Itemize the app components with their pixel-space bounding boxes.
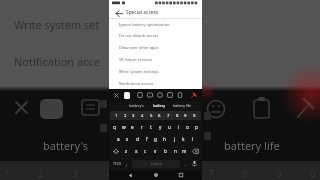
button[interactable]: a <box>115 133 122 145</box>
button[interactable]: Backspace <box>191 145 200 157</box>
button[interactable]: Close toolbar <box>112 89 121 101</box>
staticText: x <box>135 148 138 154</box>
button[interactable]: Clipboard <box>135 89 144 101</box>
staticText: w <box>122 124 126 130</box>
button[interactable]: Back <box>125 170 135 180</box>
button[interactable]: Full stop <box>182 157 189 170</box>
button[interactable]: Recent apps <box>176 170 186 180</box>
button[interactable]: Navigate up <box>109 6 126 18</box>
staticText: u <box>168 124 171 130</box>
button[interactable]: s <box>124 133 131 145</box>
button[interactable]: r <box>138 121 145 133</box>
button[interactable]: Sticker <box>165 89 174 101</box>
button[interactable]: f <box>143 133 150 145</box>
button[interactable]: Home <box>151 170 161 180</box>
staticText: b <box>164 148 167 154</box>
button[interactable]: y <box>157 121 164 133</box>
button[interactable]: GIF <box>145 89 154 101</box>
button[interactable]: p <box>193 121 200 133</box>
staticText: Write system set <box>14 17 100 32</box>
button[interactable]: w <box>120 121 127 133</box>
button[interactable]: 3 <box>130 111 137 120</box>
button[interactable]: ?123 <box>111 157 123 170</box>
button[interactable]: Shift <box>111 145 120 157</box>
staticText: English <box>151 162 162 166</box>
button[interactable]: Comma <box>123 157 130 170</box>
button[interactable]: 1 <box>113 111 120 120</box>
button[interactable]: 5 <box>148 111 155 120</box>
staticText: f <box>146 136 148 142</box>
staticText: 8 <box>242 167 248 180</box>
staticText: Write system settings <box>119 69 159 74</box>
staticText: 1 <box>115 113 118 119</box>
staticText: y <box>159 124 162 130</box>
staticText: 3 <box>72 167 78 180</box>
staticText: o <box>186 124 189 130</box>
staticText: 6 <box>174 167 180 180</box>
button[interactable]: e <box>129 121 136 133</box>
button[interactable]: k <box>180 133 187 145</box>
button[interactable]: 7 <box>165 111 172 120</box>
button[interactable]: u <box>166 121 173 133</box>
staticText: 3 <box>132 113 135 119</box>
button[interactable]: x <box>133 145 140 157</box>
staticText: 0 <box>193 113 196 119</box>
button[interactable]: z <box>123 145 130 157</box>
button[interactable]: b <box>162 145 169 157</box>
button[interactable]: Themes <box>124 92 130 99</box>
staticText: 5 <box>140 167 146 180</box>
button[interactable]: Ignore battery optimisation <box>109 19 202 30</box>
button[interactable]: 6 <box>156 111 163 120</box>
button[interactable]: v <box>152 145 159 157</box>
staticText: t <box>150 124 152 130</box>
staticText: Notification access <box>119 81 154 86</box>
staticText: 2 <box>124 113 127 119</box>
button[interactable]: l <box>189 133 196 145</box>
staticText: n <box>174 148 177 154</box>
staticText: Draw over other apps <box>119 45 159 50</box>
staticText: z <box>125 148 128 154</box>
button[interactable]: Draw over other apps <box>109 41 202 53</box>
staticText: Ignore battery optimisation <box>119 22 170 27</box>
button[interactable]: Settings <box>155 89 164 101</box>
button[interactable]: 2 <box>122 111 129 120</box>
button[interactable]: j <box>171 133 178 145</box>
button[interactable]: q <box>111 121 118 133</box>
button[interactable]: battery's <box>125 101 147 109</box>
button[interactable]: m <box>181 145 188 157</box>
button[interactable]: 0 <box>191 111 198 120</box>
button[interactable]: Pin <box>188 89 198 101</box>
button[interactable]: 4 <box>139 111 146 120</box>
button[interactable]: d <box>134 133 141 145</box>
staticText: i <box>178 124 180 130</box>
button[interactable]: battery <box>148 101 170 109</box>
staticText: 0 <box>310 167 316 180</box>
button[interactable]: Voice input <box>189 157 200 170</box>
button[interactable]: o <box>184 121 191 133</box>
button[interactable]: 8 <box>174 111 181 120</box>
staticText: . <box>185 161 187 167</box>
button[interactable]: c <box>142 145 149 157</box>
button[interactable]: battery life <box>171 101 193 109</box>
button[interactable]: VR helper services <box>109 53 202 65</box>
staticText: e <box>131 124 134 130</box>
staticText: p <box>195 124 198 130</box>
staticText: m <box>182 148 187 154</box>
button[interactable]: g <box>152 133 159 145</box>
button[interactable]: t <box>147 121 154 133</box>
button[interactable]: n <box>172 145 179 157</box>
staticText: d <box>136 136 139 142</box>
staticText: 1 <box>4 167 10 180</box>
button[interactable]: Translate <box>175 89 184 101</box>
button[interactable]: Do not disturb access <box>109 30 202 41</box>
button[interactable]: i <box>175 121 182 133</box>
staticText: Notification acce <box>14 54 100 69</box>
button[interactable]: 9 <box>182 111 189 120</box>
staticText: battery's <box>129 103 144 108</box>
button[interactable]: h <box>161 133 168 145</box>
staticText: 8 <box>176 113 179 119</box>
staticText: q <box>113 124 116 130</box>
button[interactable]: Write system settings <box>109 65 202 77</box>
button[interactable]: Notification access <box>109 77 202 89</box>
button[interactable]: English <box>132 160 180 168</box>
